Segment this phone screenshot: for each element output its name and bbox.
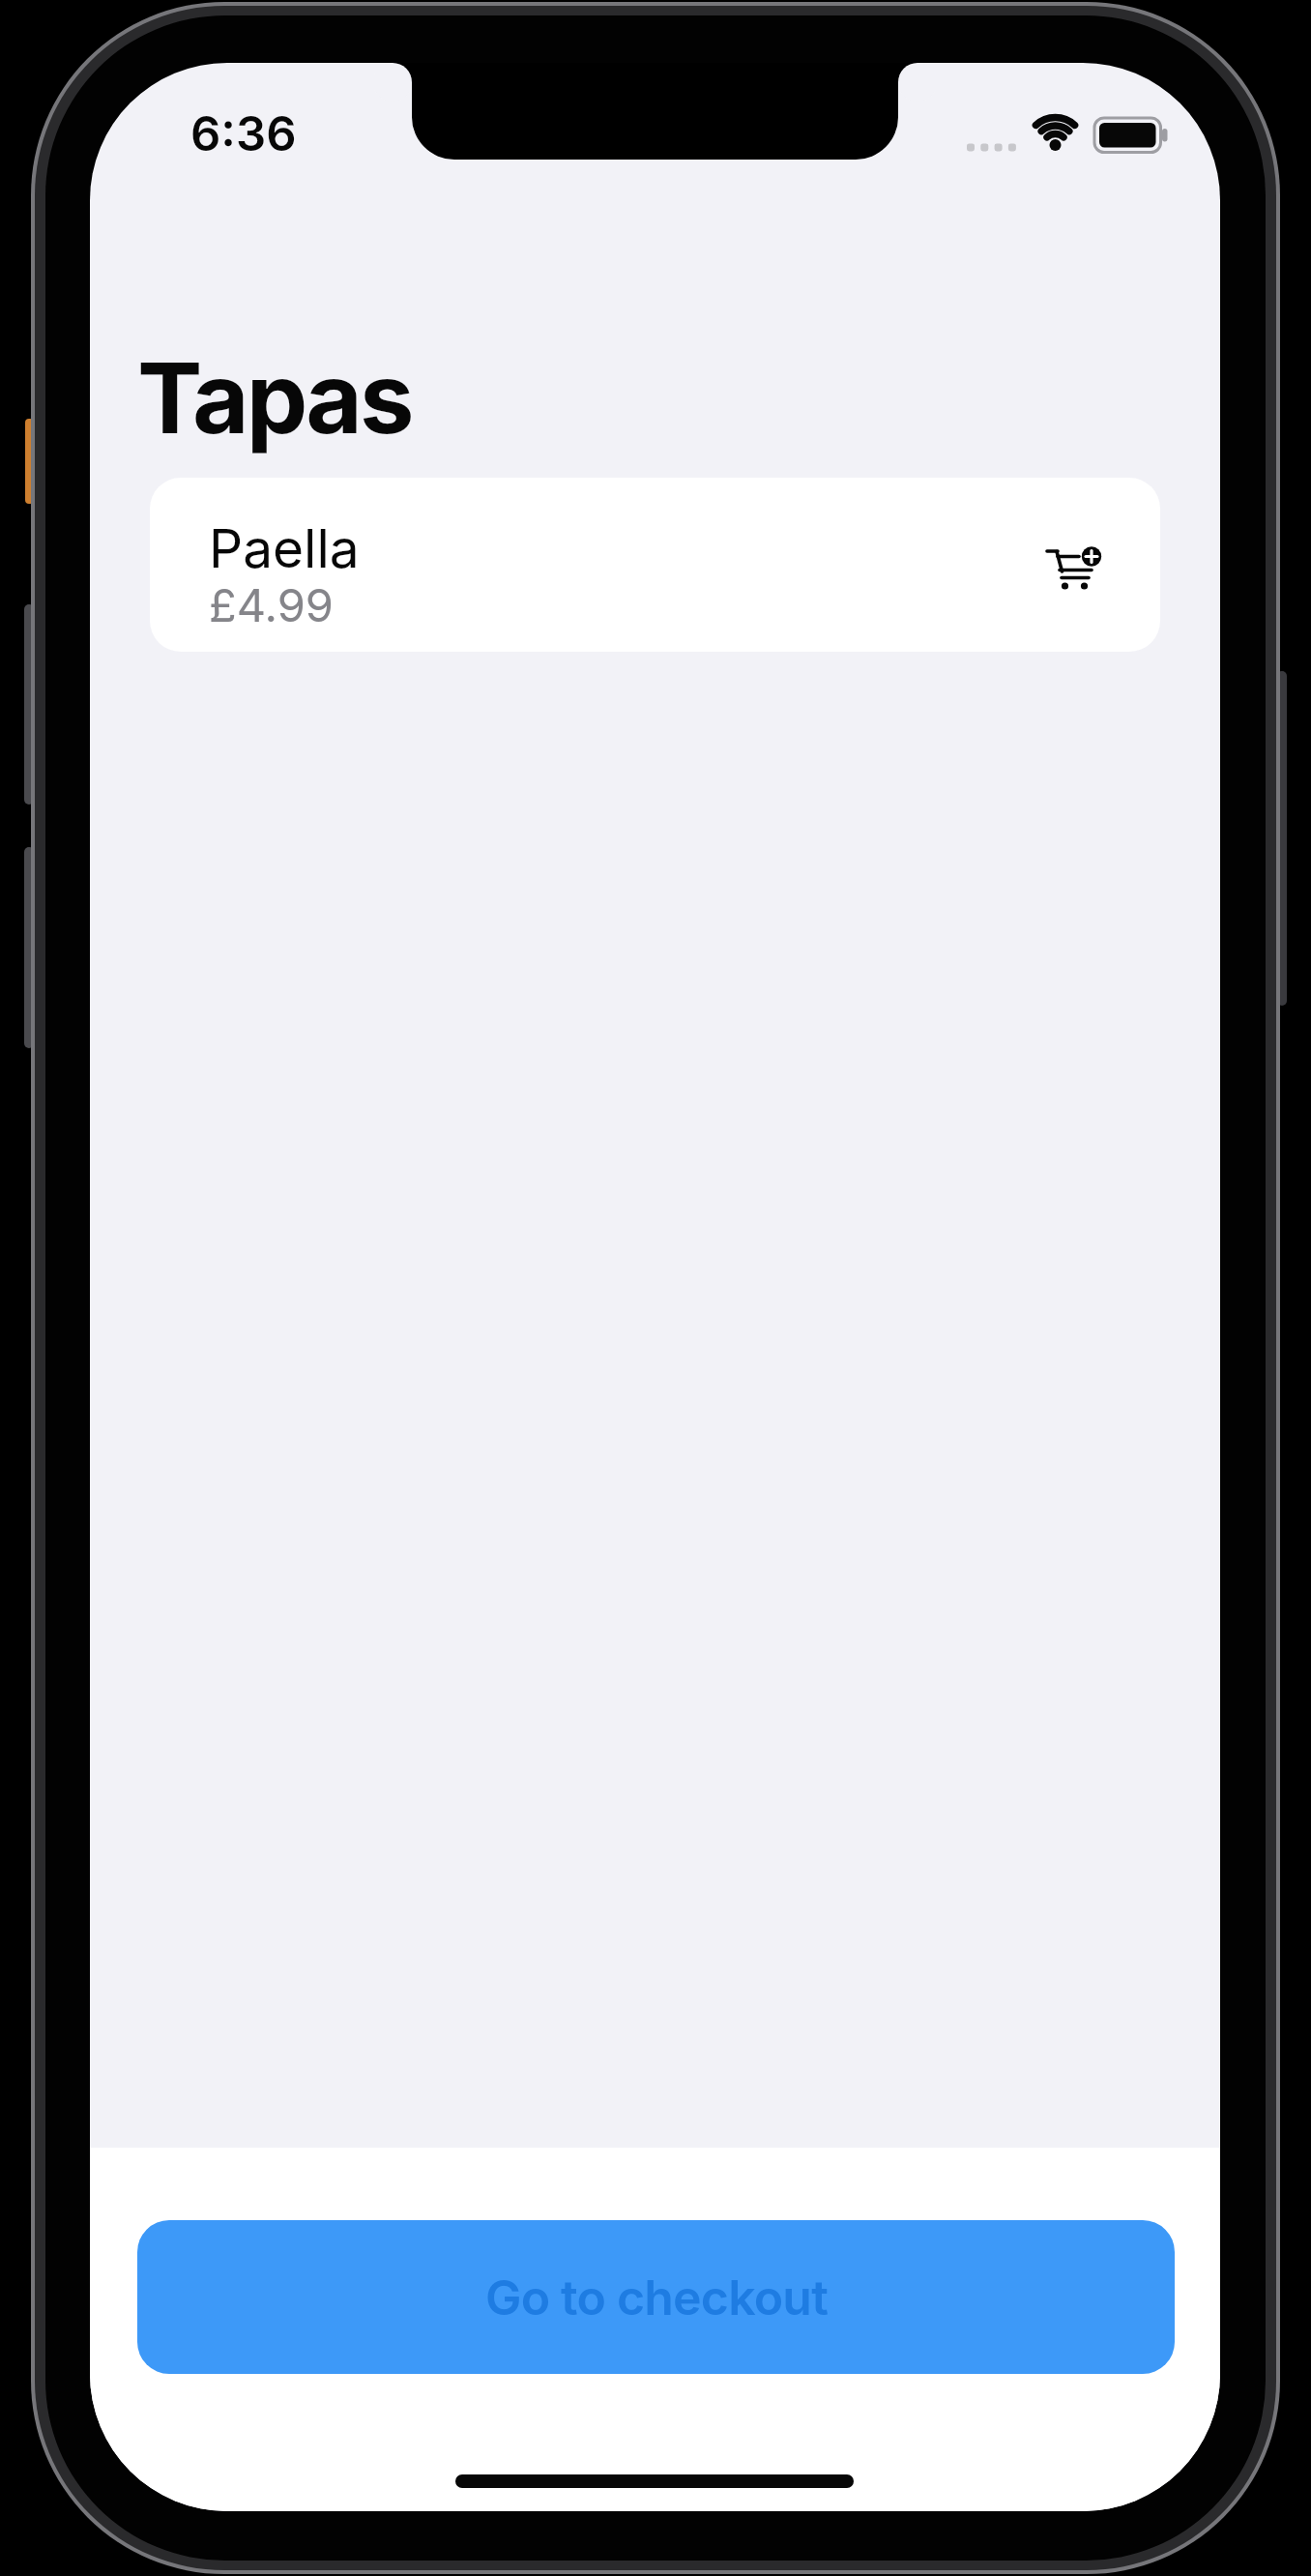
button[interactable] — [1020, 514, 1128, 623]
staticText: Tapas — [137, 338, 412, 456]
staticText: Go to checkout — [485, 2269, 828, 2327]
button[interactable]: Go to checkout — [137, 2220, 1175, 2374]
staticText: £4.99 — [209, 577, 334, 632]
staticText: 6:36 — [190, 105, 297, 162]
staticText: Paella — [209, 516, 360, 581]
